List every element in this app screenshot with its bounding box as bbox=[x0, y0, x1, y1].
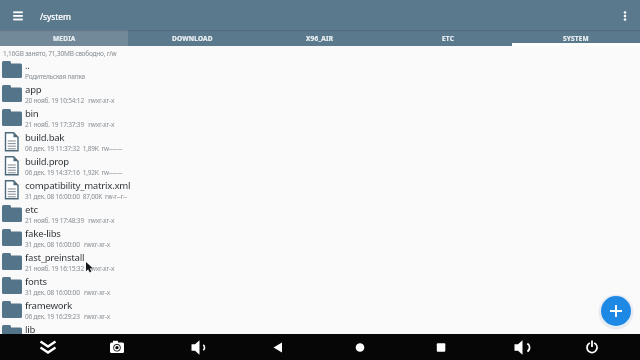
staticText: 1,16GB занято, 71,30MB свободно, r/w bbox=[3, 49, 117, 58]
staticText: X96_AIR bbox=[306, 34, 334, 43]
staticText: /system bbox=[40, 11, 71, 23]
button[interactable] bbox=[184, 334, 212, 360]
button[interactable]: build.bak bbox=[0, 130, 640, 154]
button[interactable] bbox=[616, 7, 632, 23]
button[interactable]: compatibility_matrix.xml bbox=[0, 178, 640, 202]
staticText: 21 нояб. 19 16:15:32 rwxr-xr-x bbox=[25, 264, 115, 273]
staticText: 31 дек. 08 16:00:00 rwxr-xr-x bbox=[25, 336, 110, 345]
button[interactable]: bin bbox=[0, 106, 640, 130]
staticText: MEDIA bbox=[53, 34, 76, 43]
staticText: etc bbox=[25, 203, 38, 216]
staticText: 31 дек. 08 16:00:00 rwxr-xr-x bbox=[25, 288, 110, 297]
staticText: ETC bbox=[442, 34, 455, 43]
button[interactable]: DOWNLOAD bbox=[128, 30, 256, 46]
staticText: Родительская папка bbox=[25, 72, 85, 81]
staticText: .. bbox=[25, 59, 30, 72]
staticText: compatibility_matrix.xml bbox=[25, 179, 131, 192]
button[interactable] bbox=[601, 296, 631, 326]
button[interactable]: lib bbox=[0, 322, 640, 346]
staticText: framework bbox=[25, 299, 73, 312]
staticText: lib bbox=[25, 323, 36, 336]
button[interactable] bbox=[9, 6, 27, 24]
staticText: 31 дек. 08 16:00:00 rwxr-xr-x bbox=[25, 240, 110, 249]
staticText: fonts bbox=[25, 275, 47, 288]
button[interactable] bbox=[578, 334, 606, 360]
staticText: bin bbox=[25, 107, 39, 120]
staticText: 06 дек. 19 16:29:23 rwxr-xr-x bbox=[25, 312, 110, 321]
staticText: 06 дек. 19 14:37:16 1,92K rw------- bbox=[25, 168, 123, 177]
button[interactable]: fast_preinstall bbox=[0, 250, 640, 274]
staticText: fast_preinstall bbox=[25, 251, 85, 264]
button[interactable]: build.prop bbox=[0, 154, 640, 178]
staticText: DOWNLOAD bbox=[172, 34, 213, 43]
button[interactable]: X96_AIR bbox=[256, 30, 384, 46]
button[interactable]: framework bbox=[0, 298, 640, 322]
staticText: build.prop bbox=[25, 155, 69, 168]
button[interactable] bbox=[103, 334, 131, 360]
button[interactable]: .. bbox=[0, 58, 640, 82]
staticText: 31 дек. 08 16:00:00 87,00K rw-r--r-- bbox=[25, 192, 127, 201]
button[interactable] bbox=[346, 334, 374, 360]
staticText: 06 дек. 19 11:37:32 1,89K rw------- bbox=[25, 144, 123, 153]
staticText: 21 нояб. 19 17:37:39 rwxr-xr-x bbox=[25, 120, 115, 129]
button[interactable]: ETC bbox=[384, 30, 512, 46]
button[interactable]: app bbox=[0, 82, 640, 106]
button[interactable] bbox=[34, 334, 62, 360]
button[interactable] bbox=[264, 334, 292, 360]
staticText: SYSTEM bbox=[563, 34, 589, 43]
button[interactable]: etc bbox=[0, 202, 640, 226]
button[interactable]: SYSTEM bbox=[512, 30, 640, 46]
staticText: 20 нояб. 19 10:54:12 rwxr-xr-x bbox=[25, 96, 115, 105]
button[interactable]: fake-libs bbox=[0, 226, 640, 250]
staticText: fake-libs bbox=[25, 227, 61, 240]
staticText: 21 нояб. 19 17:48:39 rwxr-xr-x bbox=[25, 216, 115, 225]
button[interactable] bbox=[507, 334, 535, 360]
staticText: app bbox=[25, 83, 42, 96]
button[interactable]: MEDIA bbox=[0, 30, 128, 46]
button[interactable]: fonts bbox=[0, 274, 640, 298]
button[interactable] bbox=[427, 334, 455, 360]
staticText: build.bak bbox=[25, 131, 65, 144]
